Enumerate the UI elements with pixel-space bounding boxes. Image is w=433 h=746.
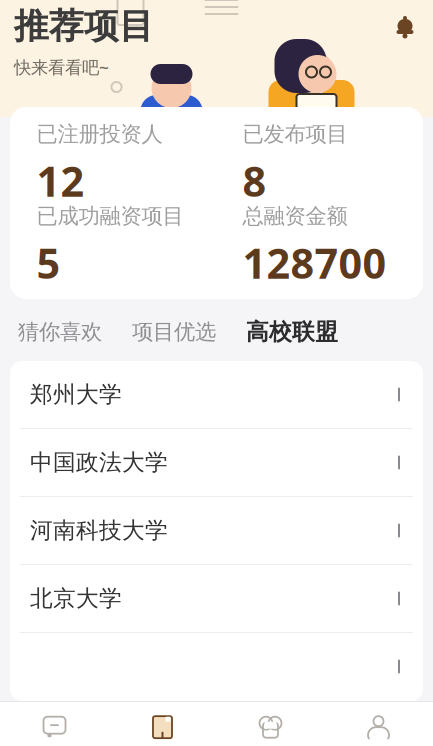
- staticText: 快来看看吧~: [14, 56, 109, 79]
- button[interactable]: 高校联盟: [242, 310, 342, 354]
- staticText: 已注册投资人: [36, 121, 162, 147]
- staticText: 12: [36, 153, 84, 208]
- staticText: 推荐项目: [14, 5, 154, 48]
- button[interactable]: 推荐: [108, 705, 216, 746]
- staticText: 8: [242, 153, 266, 208]
- staticText: 河南科技大学: [30, 517, 168, 544]
- staticText: 128700: [242, 235, 386, 290]
- staticText: 高校联盟: [246, 318, 338, 346]
- staticText: 猜你喜欢: [18, 319, 102, 345]
- button[interactable]: 项目优选: [128, 311, 220, 353]
- button[interactable]: 关注: [216, 705, 324, 746]
- staticText: 中国政法大学: [30, 449, 168, 476]
- staticText: 北京大学: [30, 585, 122, 612]
- staticText: 5: [36, 235, 60, 290]
- button[interactable]: 中国政法大学: [10, 429, 423, 497]
- staticText: 项目优选: [132, 319, 216, 345]
- button[interactable]: 北京大学: [10, 565, 423, 633]
- button[interactable]: 河南科技大学: [10, 497, 423, 565]
- staticText: 已发布项目: [242, 121, 347, 147]
- button[interactable]: 消息: [0, 705, 108, 746]
- button[interactable]: [10, 633, 423, 701]
- staticText: 郑州大学: [30, 381, 122, 408]
- button[interactable]: 我的: [324, 705, 432, 746]
- button[interactable]: 通知: [383, 5, 427, 49]
- staticText: 总融资金额: [242, 203, 347, 229]
- button[interactable]: 郑州大学: [10, 361, 423, 429]
- staticText: 已成功融资项目: [36, 203, 183, 229]
- button[interactable]: 猜你喜欢: [14, 311, 106, 353]
